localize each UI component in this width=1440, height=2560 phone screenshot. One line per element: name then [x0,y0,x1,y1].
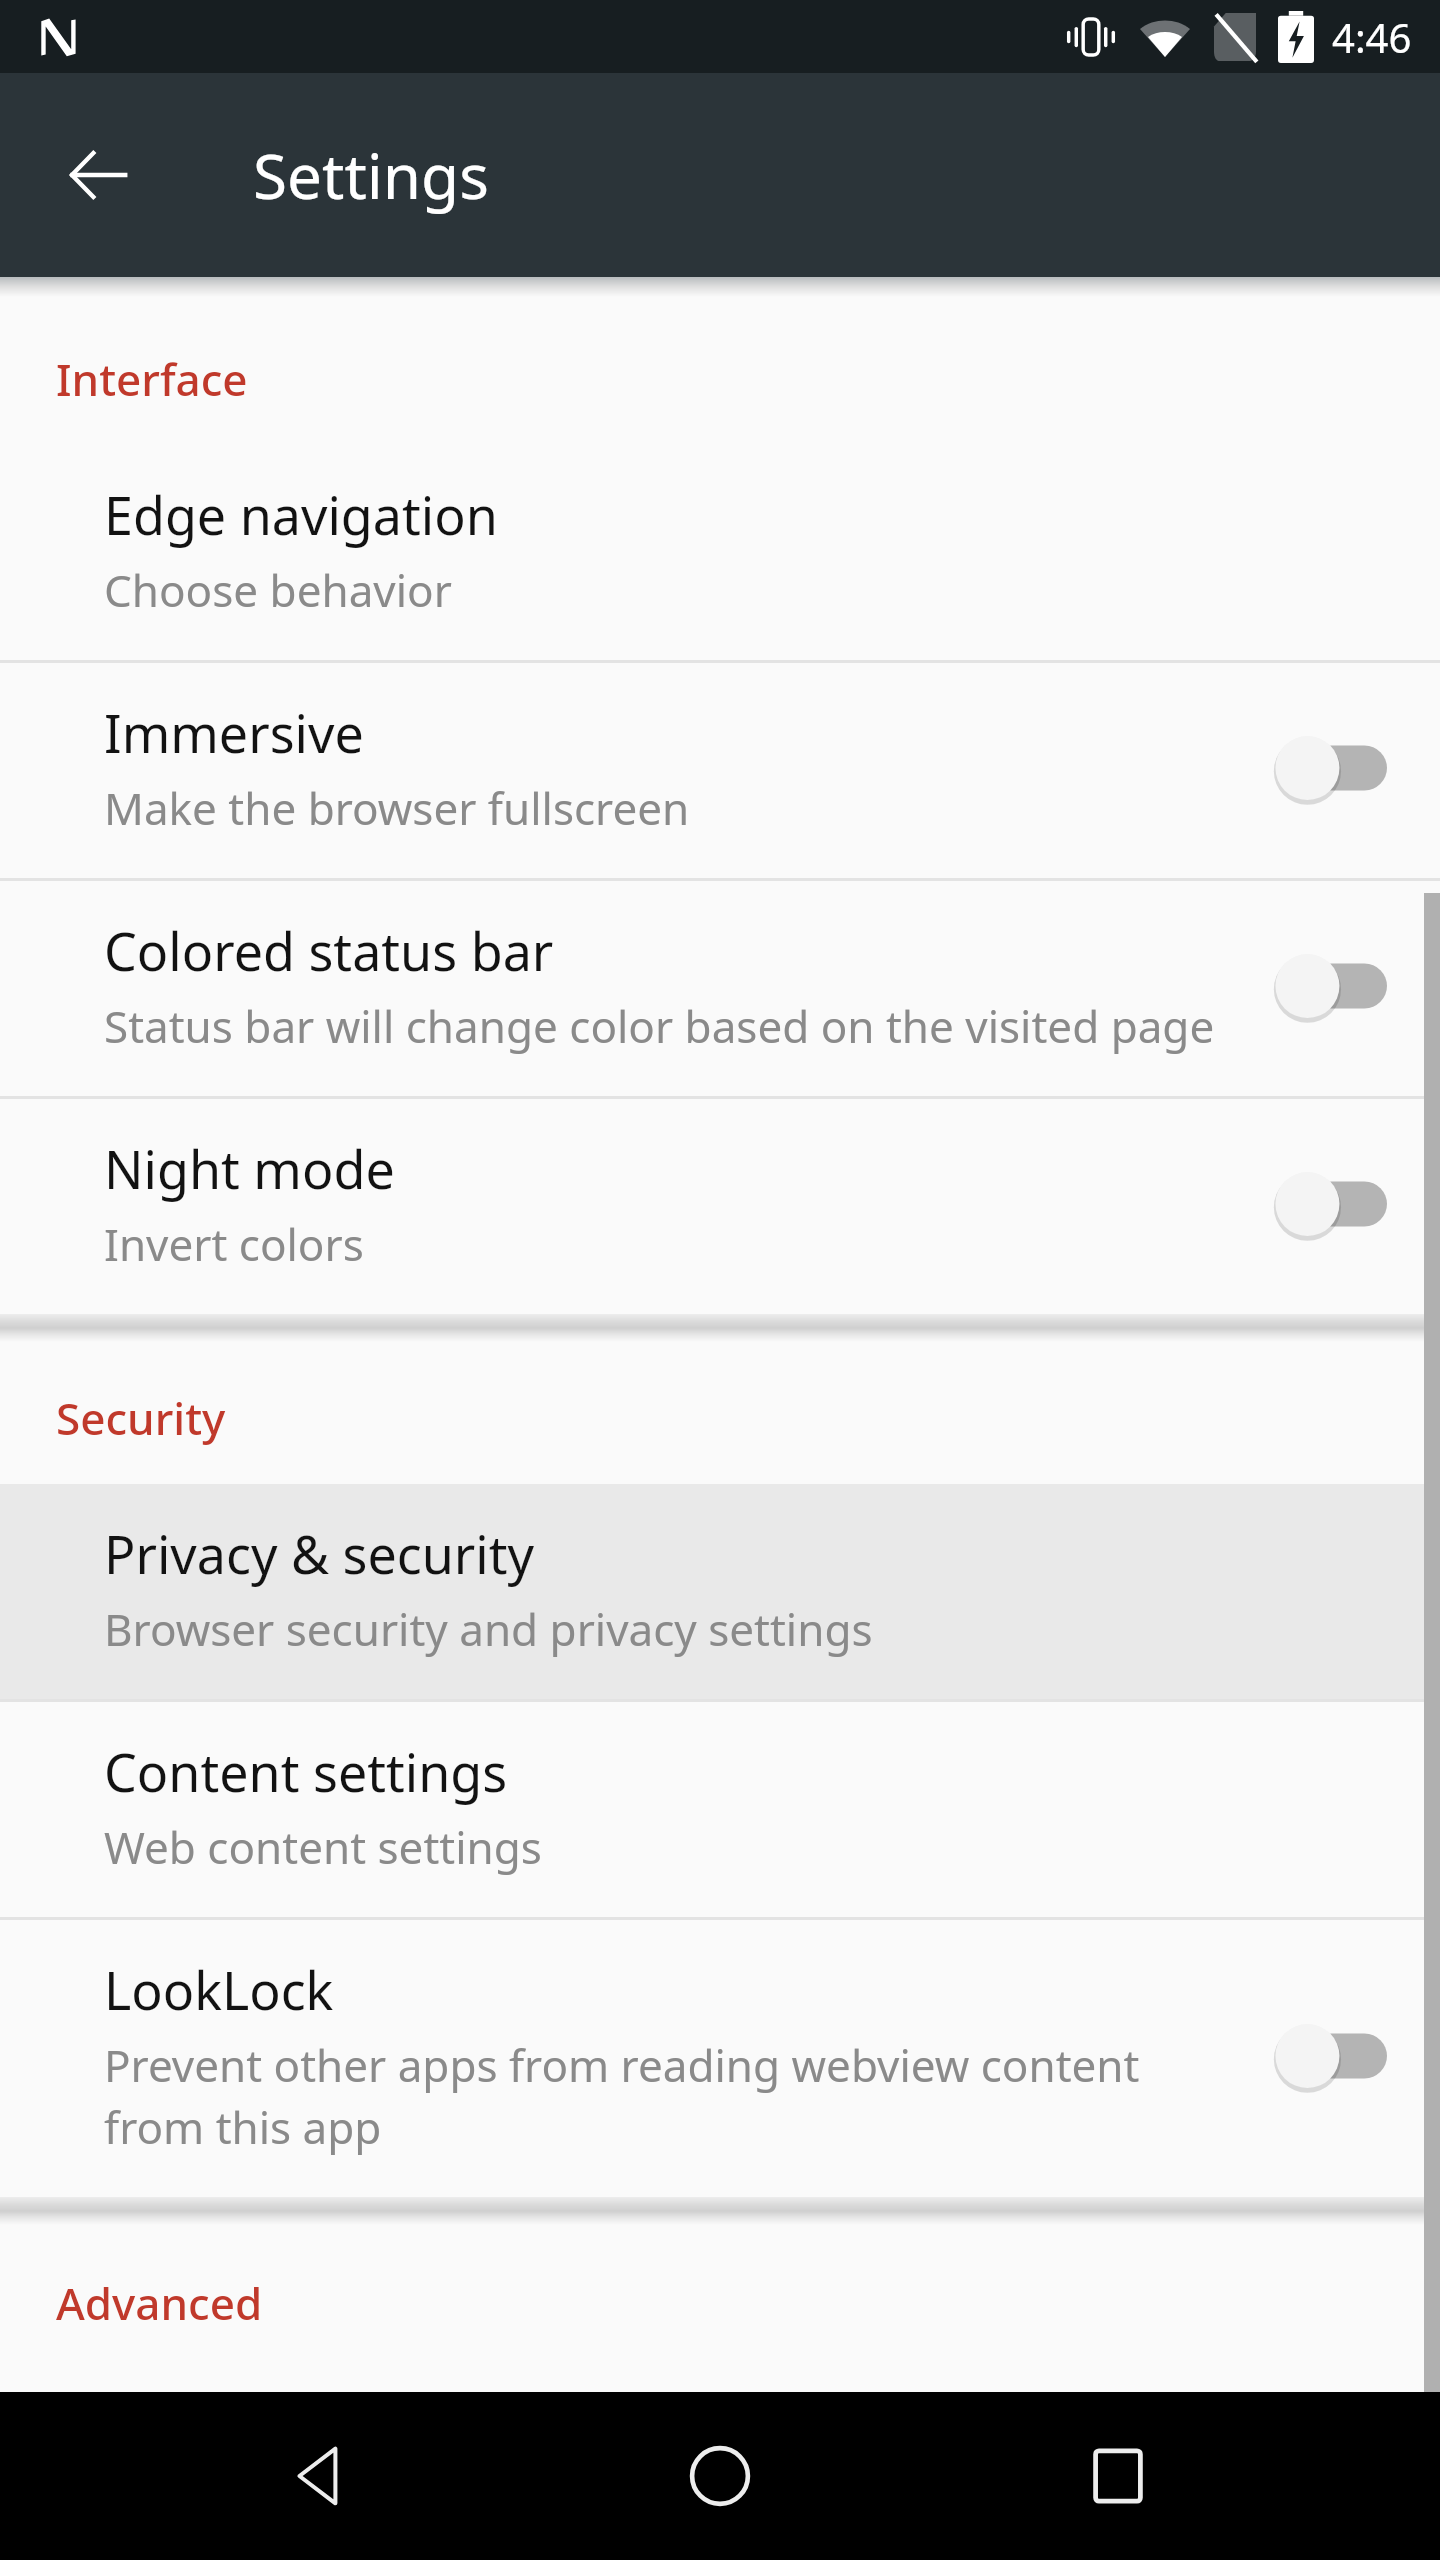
button[interactable]: LookLock [0,1920,1440,2197]
staticText: Security [56,1388,226,1448]
staticText: Make the browser fullscreen [104,778,690,838]
staticText: Interface [56,349,248,409]
staticText: Prevent other apps from reading webview … [104,2035,1230,2157]
staticText: Edge navigation [104,479,498,550]
staticText: Privacy & security [104,1518,535,1589]
button[interactable]: Home [645,2401,795,2551]
staticText: Settings [253,133,489,217]
button[interactable]: Back [50,127,146,223]
staticText: Choose behavior [104,560,452,620]
staticText: Immersive [104,697,364,768]
button[interactable]: Toggle [1270,946,1400,1026]
button[interactable]: Toggle [1270,1164,1400,1244]
button[interactable]: Edge navigation [0,445,1440,660]
staticText: Content settings [104,1736,508,1807]
button[interactable]: Privacy & security [0,1484,1440,1699]
button[interactable]: Content settings [0,1702,1440,1917]
button[interactable]: Toggle [1270,728,1400,808]
staticText: Advanced [56,2273,263,2333]
button[interactable]: Toggle [1270,2016,1400,2096]
staticText: Night mode [104,1133,395,1204]
staticText: Web content settings [104,1817,542,1877]
button[interactable]: Back [248,2401,398,2551]
button[interactable]: Recents [1043,2401,1193,2551]
button[interactable]: Immersive [0,663,1440,878]
staticText: 4:46 [1332,10,1412,64]
button[interactable]: Power save mode [0,2369,1440,2392]
button[interactable]: Night mode [0,1099,1440,1314]
staticText: Status bar will change color based on th… [104,996,1215,1056]
button[interactable]: Colored status bar [0,881,1440,1096]
staticText: Browser security and privacy settings [104,1599,873,1659]
staticText: Invert colors [104,1214,364,1274]
staticText: LookLock [104,1954,334,2025]
staticText: Colored status bar [104,915,554,986]
